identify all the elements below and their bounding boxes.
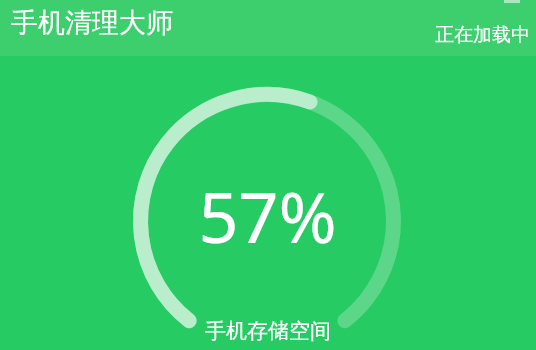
staticText: 手机存储空间: [205, 318, 331, 344]
staticText: 57%: [198, 168, 337, 263]
button[interactable]: 手机存储空间 57%: [133, 87, 401, 350]
button[interactable]: 手机存储空间: [205, 318, 331, 344]
button[interactable]: 手机清理大师: [11, 6, 173, 40]
button[interactable]: 正在加载中: [435, 23, 530, 47]
